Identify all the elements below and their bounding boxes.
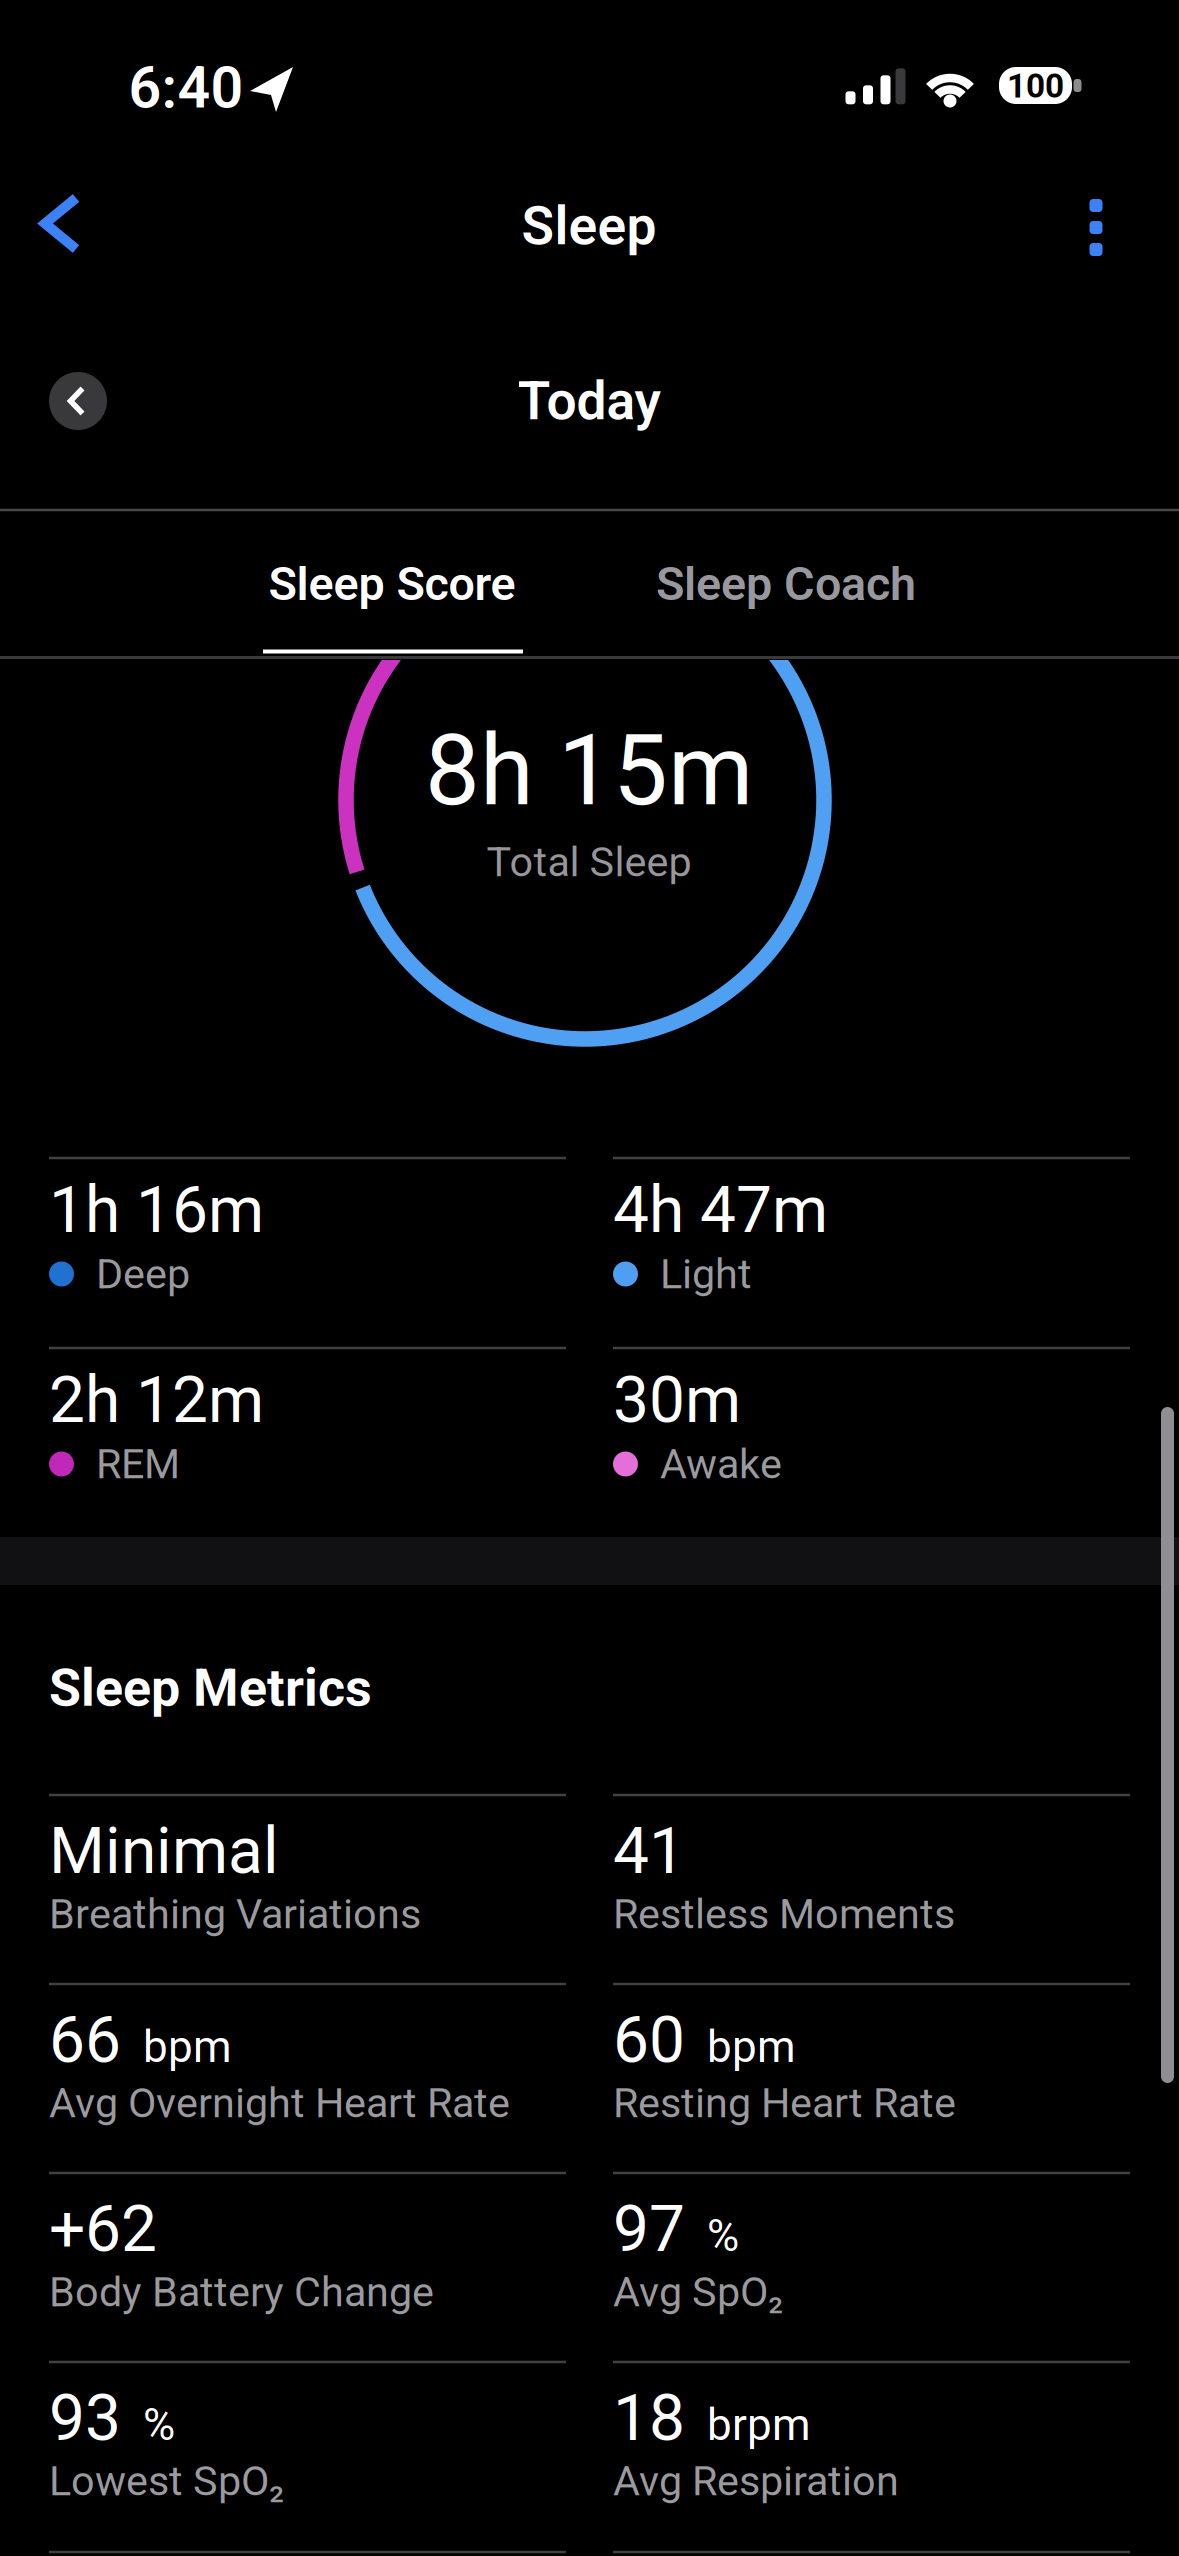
staticText: Avg Respiration [613,2457,899,2505]
staticText: Restless Moments [613,1890,955,1938]
button[interactable]: Sleep Coach [596,534,976,634]
staticText: 93 [49,2380,121,2455]
button[interactable] [25,190,91,256]
button[interactable]: Sleep Score [202,534,582,634]
staticText: 8h 15m [425,714,753,828]
staticText: 30m [613,1362,741,1437]
staticText: Lowest SpO₂ [49,2457,284,2505]
staticText: % [143,2399,175,2451]
staticText: 2h 12m [49,1362,264,1437]
staticText: Total Sleep [486,838,691,886]
staticText: 6:40 [128,54,243,122]
staticText: Body Battery Change [49,2268,434,2316]
staticText: brpm [707,2399,811,2451]
staticText: Breathing Variations [49,1890,421,1938]
button[interactable] [49,372,107,430]
staticText: 4h 47m [613,1172,828,1247]
staticText: Sleep Metrics [49,1657,372,1718]
staticText: Light [660,1250,752,1298]
staticText: 97 [613,2191,685,2266]
staticText: Avg SpO₂ [613,2268,783,2316]
staticText: 66 [49,2002,121,2077]
staticText: bpm [707,2021,796,2073]
staticText: 1h 16m [49,1172,264,1247]
staticText: Sleep Coach [656,557,916,611]
staticText: 41 [613,1813,685,1888]
staticText: Sleep Score [268,557,515,611]
button[interactable] [1066,194,1126,260]
staticText: Minimal [49,1813,279,1888]
staticText: REM [96,1440,180,1488]
staticText: Deep [96,1250,190,1298]
staticText: Today [517,370,660,432]
staticText: 18 [613,2380,685,2455]
staticText: Resting Heart Rate [613,2079,956,2127]
staticText: bpm [143,2021,232,2073]
staticText: % [707,2210,739,2262]
staticText: Avg Overnight Heart Rate [49,2079,510,2127]
staticText: 100 [1007,66,1064,106]
staticText: 60 [613,2002,685,2077]
staticText: Awake [660,1440,782,1488]
staticText: +62 [49,2191,157,2266]
staticText: Sleep [521,195,656,257]
